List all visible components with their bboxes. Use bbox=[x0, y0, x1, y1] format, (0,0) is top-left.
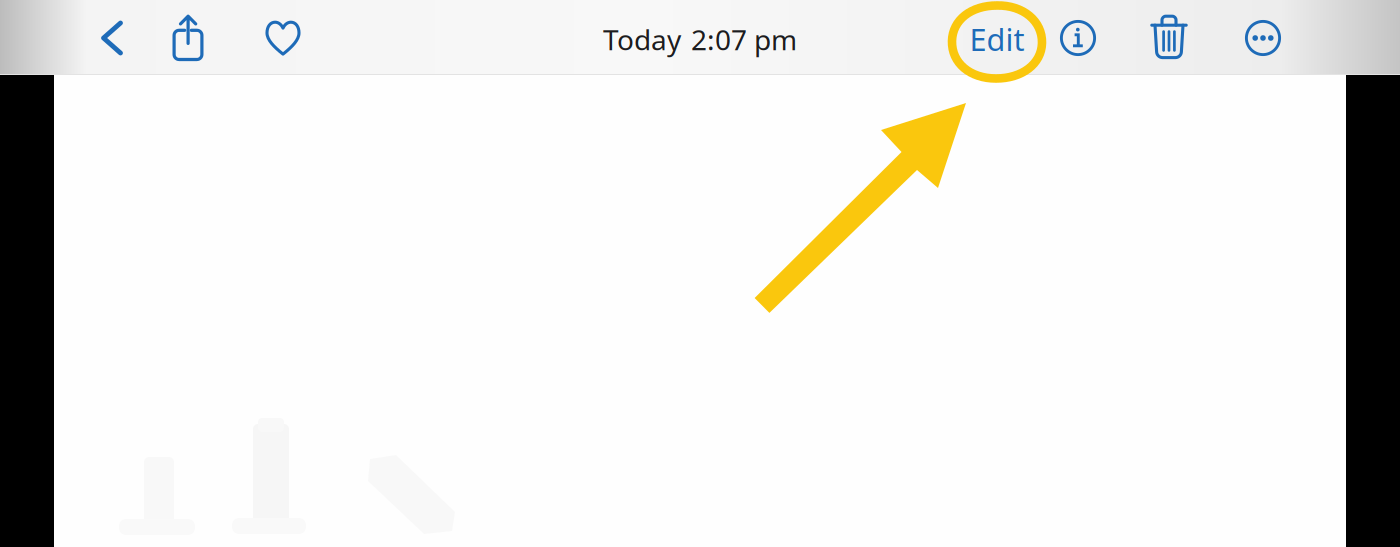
staticText: Edit bbox=[969, 19, 1024, 59]
button[interactable]: Favorite bbox=[255, 7, 311, 69]
button[interactable]: Info bbox=[1050, 7, 1106, 69]
button[interactable]: Edit bbox=[962, 8, 1032, 70]
button[interactable]: Share bbox=[160, 6, 216, 68]
button[interactable]: Back bbox=[84, 7, 140, 69]
staticText: 2:07 pm bbox=[691, 21, 797, 58]
button[interactable]: Delete bbox=[1141, 6, 1197, 68]
button[interactable]: More bbox=[1235, 7, 1291, 69]
staticText: Today bbox=[603, 21, 681, 58]
